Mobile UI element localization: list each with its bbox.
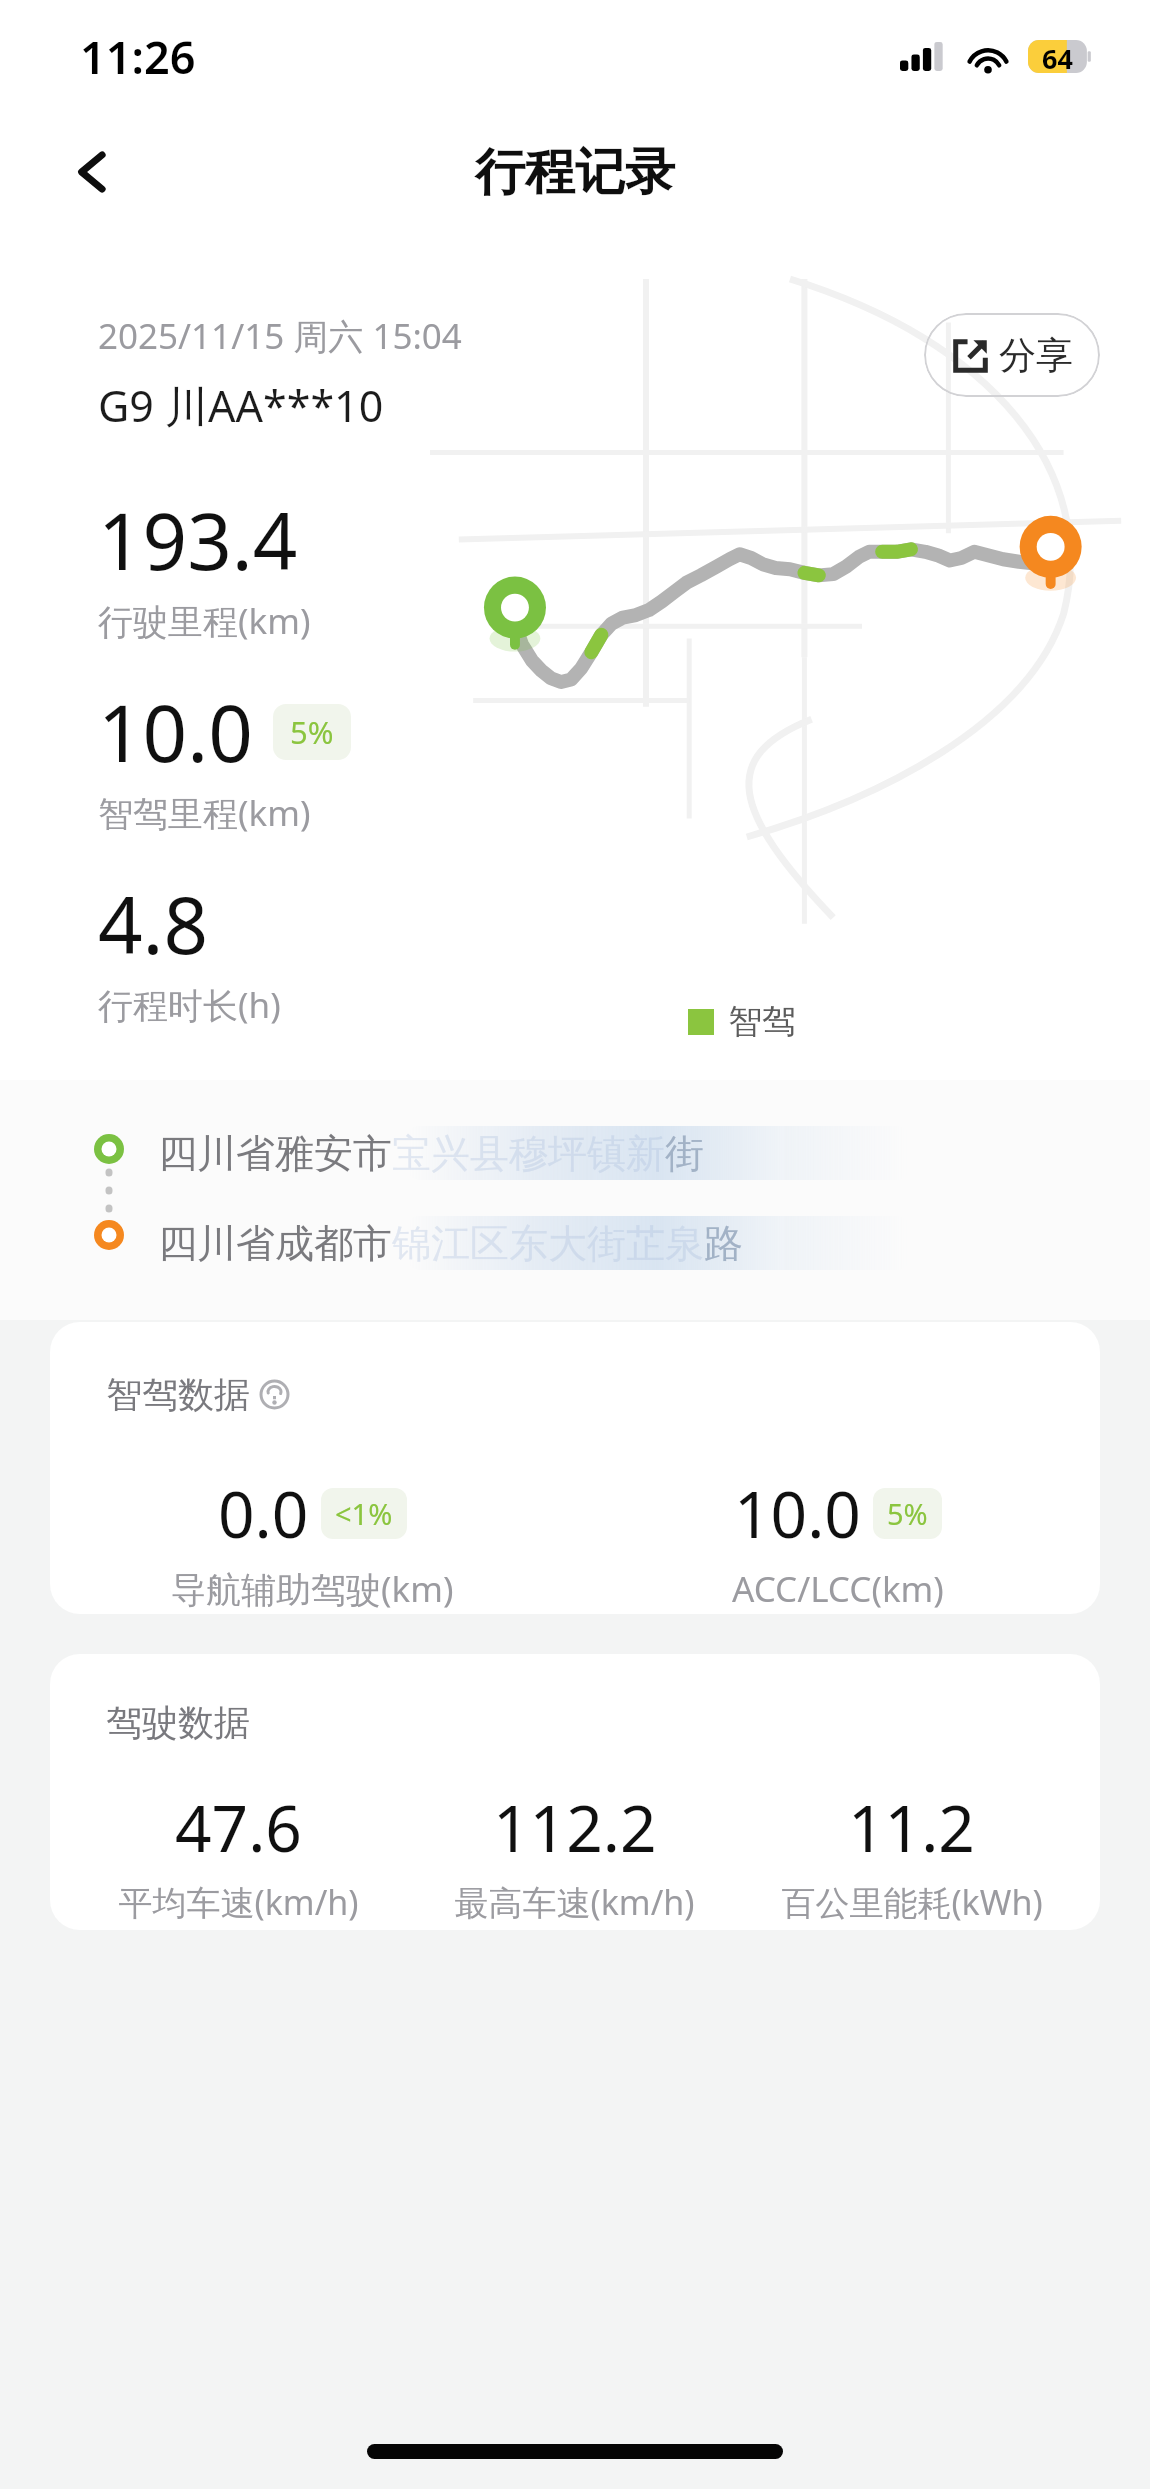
staticText: 10.0 (98, 679, 253, 785)
staticText: 行程记录 (475, 141, 675, 204)
staticText: 10.0 (734, 1470, 861, 1557)
staticText: 分享 (999, 332, 1073, 379)
staticText: 四川省雅安市 (158, 1129, 392, 1178)
staticText: 193.4 (98, 487, 298, 593)
button[interactable]: Back (50, 129, 136, 215)
button[interactable]: 分享 (924, 313, 1100, 397)
staticText: G9 川AA***10 (98, 376, 384, 435)
staticText: 四川省成都市 (158, 1219, 392, 1268)
staticText: 平均车速(km/h) (118, 1879, 359, 1925)
staticText: 最高车速(km/h) (454, 1879, 695, 1925)
staticText: 0.0 (218, 1470, 309, 1557)
staticText: 47.6 (175, 1784, 302, 1871)
staticText: 百公里能耗(kWh) (781, 1879, 1043, 1925)
staticText: 行驶里程(km) (98, 597, 311, 645)
staticText: 2025/11/15 周六 15:04 (98, 312, 462, 360)
staticText: 导航辅助驾驶(km) (171, 1565, 454, 1613)
staticText: 64 (1042, 40, 1073, 73)
staticText: 智驾 (728, 1000, 796, 1043)
staticText: <1% (335, 1494, 393, 1533)
staticText: ACC/LCC(km) (732, 1565, 944, 1613)
staticText: 行程时长(h) (98, 981, 281, 1029)
staticText: 智驾数据 (106, 1372, 250, 1417)
staticText: 11:26 (80, 26, 196, 87)
button[interactable]: 驾驶数据 (50, 1654, 1100, 1930)
staticText: 路 (704, 1219, 743, 1268)
button[interactable]: 智驾数据 (50, 1322, 1100, 1614)
staticText: 112.2 (493, 1784, 657, 1871)
staticText: 5% (290, 711, 334, 753)
staticText: 5% (887, 1494, 928, 1533)
staticText: 4.8 (98, 871, 209, 977)
staticText: 宝兴县穆坪镇新 (392, 1129, 665, 1178)
staticText: 11.2 (848, 1784, 975, 1871)
staticText: 智驾里程(km) (98, 789, 311, 837)
staticText: 锦江区东大街芷泉 (392, 1219, 704, 1268)
staticText: 驾驶数据 (106, 1700, 250, 1745)
staticText: 街 (665, 1129, 704, 1178)
